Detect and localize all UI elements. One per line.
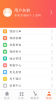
staticText: 客服中心 [9, 64, 21, 67]
button[interactable]: 关于我们 [0, 75, 56, 82]
staticText: 关于我们 [9, 77, 21, 81]
button[interactable]: 分类 [14, 89, 28, 100]
staticText: 首页 [4, 96, 10, 100]
button[interactable]: 我的收藏 [0, 35, 56, 41]
staticText: 我的收藏 [9, 36, 21, 40]
staticText: 查看并编辑个人资料 [14, 14, 41, 17]
staticText: 设置中心 [9, 84, 21, 87]
button[interactable]: 客服中心 [0, 62, 56, 69]
staticText: 购物车 [30, 96, 39, 100]
staticText: 优惠券包 [9, 43, 21, 47]
button[interactable]: 我的订单 [0, 28, 56, 35]
button[interactable]: 首页 [0, 89, 14, 100]
staticText: 我的订单 [9, 30, 21, 33]
staticText: 用户名称 [14, 8, 30, 13]
button[interactable]: 用户名称 [0, 0, 56, 17]
staticText: 我的 [46, 96, 52, 100]
button[interactable]: 我的积分 [0, 48, 56, 55]
staticText: 我的积分 [9, 50, 21, 53]
button[interactable]: 地址管理 [0, 55, 56, 62]
staticText: 分类 [18, 96, 24, 100]
staticText: 意见反馈 [9, 70, 21, 74]
staticText: 地址管理 [9, 57, 21, 60]
button[interactable]: 我的 [42, 89, 56, 100]
button[interactable]: 优惠券包 [0, 41, 56, 48]
button[interactable]: 意见反馈 [0, 69, 56, 75]
button[interactable]: 购物车 [28, 89, 42, 100]
button[interactable]: 设置中心 [0, 82, 56, 89]
